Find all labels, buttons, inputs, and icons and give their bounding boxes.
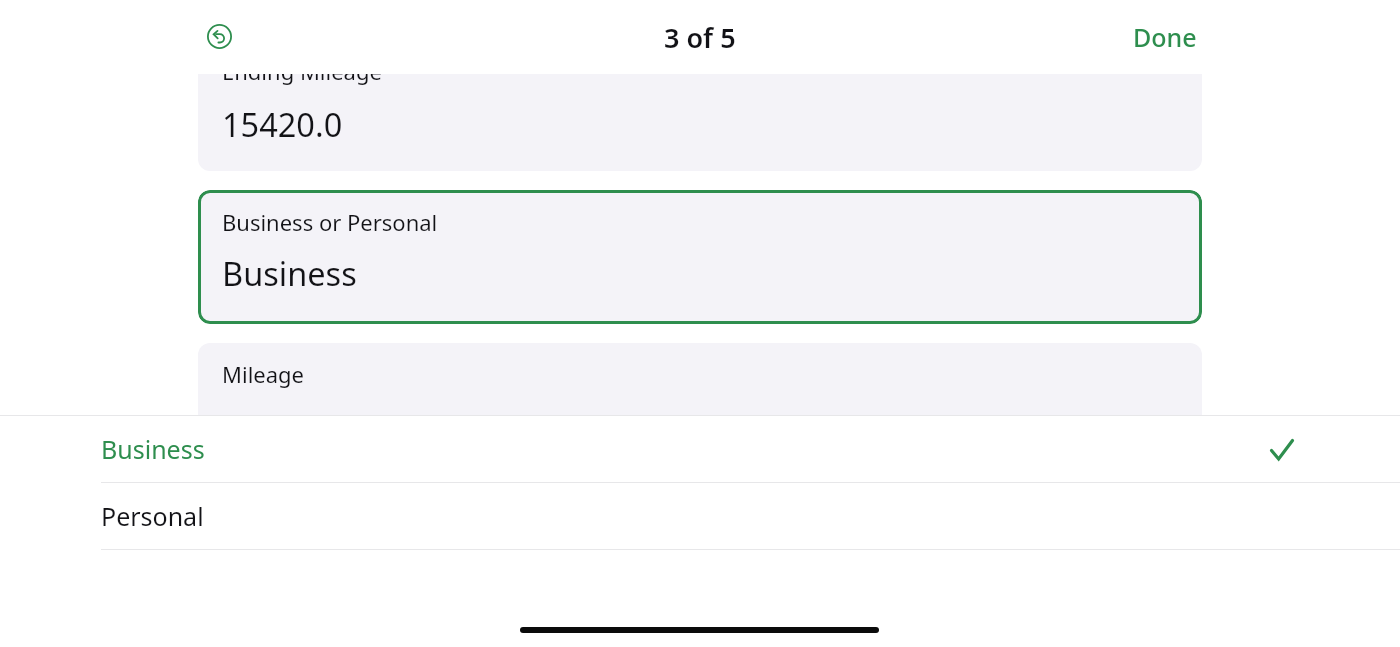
staticText: 15420.0 (222, 102, 343, 146)
button[interactable]: Business (0, 416, 1400, 482)
button[interactable]: Business or Personal (198, 190, 1202, 324)
button[interactable]: Undo (195, 12, 243, 60)
staticText: Business (101, 432, 205, 466)
staticText: Mileage (222, 359, 304, 389)
staticText: 3 of 5 (664, 19, 736, 56)
staticText: Business or Personal (222, 207, 438, 237)
button[interactable]: Ending Mileage (198, 40, 1202, 171)
staticText: Ending Mileage (222, 56, 382, 86)
staticText: Business (222, 251, 357, 295)
button[interactable]: Personal (0, 483, 1400, 549)
button[interactable]: Done (1129, 14, 1201, 60)
button[interactable]: Mileage (198, 343, 1202, 415)
staticText: Personal (101, 499, 204, 533)
staticText: Done (1133, 20, 1197, 54)
